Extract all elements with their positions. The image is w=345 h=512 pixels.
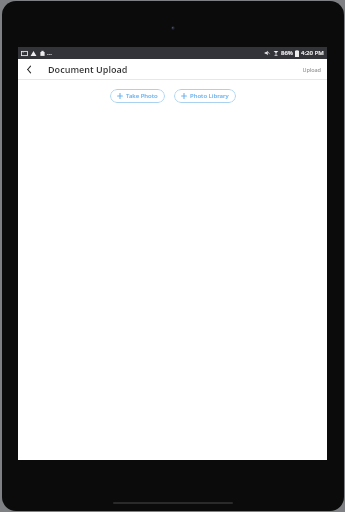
staticText: ... [47,49,52,57]
staticText: Take Photo [126,92,158,100]
button[interactable]: Upload [296,59,327,79]
staticText: Upload [302,66,321,73]
staticText: Photo Library [190,92,229,100]
button[interactable]: Take Photo [110,89,165,103]
button[interactable]: Back [18,59,40,79]
staticText: 86% [281,49,293,57]
staticText: 4:20 PM [301,49,324,57]
button[interactable]: Photo Library [174,89,236,103]
staticText: Document Upload [48,63,128,75]
